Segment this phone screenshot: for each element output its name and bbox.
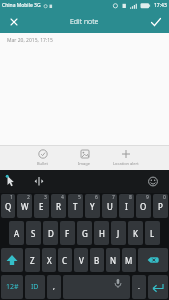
staticText: R xyxy=(56,201,61,212)
staticText: C xyxy=(62,255,68,266)
staticText: K xyxy=(133,228,138,239)
staticText: China Mobile 3G xyxy=(2,2,41,9)
staticText: 5 xyxy=(78,194,81,201)
staticText: W xyxy=(21,201,29,212)
button[interactable]: N xyxy=(106,248,120,272)
button[interactable]: S xyxy=(26,221,41,245)
staticText: ID xyxy=(31,282,39,292)
button[interactable]: R xyxy=(51,194,66,218)
staticText: J xyxy=(117,228,120,239)
staticText: X xyxy=(47,255,52,266)
button[interactable]: 12# xyxy=(1,275,23,299)
staticText: 3 xyxy=(44,194,47,201)
staticText: 17:43 xyxy=(154,2,167,9)
button[interactable]: D xyxy=(43,221,58,245)
button[interactable]: , xyxy=(47,275,61,299)
staticText: T xyxy=(73,201,78,212)
staticText: . xyxy=(138,282,140,292)
button[interactable]: M xyxy=(122,248,136,272)
button[interactable] xyxy=(149,15,163,29)
button[interactable]: . xyxy=(132,275,146,299)
button[interactable]: T xyxy=(68,194,83,218)
button[interactable]: L xyxy=(145,221,160,245)
staticText: 6 xyxy=(95,194,98,201)
staticText: 7 xyxy=(112,194,115,201)
staticText: P xyxy=(158,201,163,212)
button[interactable]: U xyxy=(102,194,117,218)
staticText: F xyxy=(65,228,70,239)
button[interactable]: Q xyxy=(1,194,15,218)
button[interactable]: Bullet xyxy=(37,149,48,166)
button[interactable]: G xyxy=(77,221,92,245)
staticText: U xyxy=(107,201,113,212)
staticText: B xyxy=(94,255,100,266)
button[interactable] xyxy=(1,248,23,272)
staticText: 9 xyxy=(146,194,149,201)
staticText: V xyxy=(79,255,84,266)
staticText: 2 xyxy=(27,194,30,201)
button[interactable] xyxy=(148,275,168,299)
button[interactable]: B xyxy=(90,248,104,272)
staticText: Z xyxy=(30,255,35,266)
button[interactable]: W xyxy=(17,194,32,218)
button[interactable]: H xyxy=(94,221,109,245)
staticText: Q xyxy=(5,201,12,212)
button[interactable] xyxy=(138,248,168,272)
staticText: Y xyxy=(90,201,95,212)
staticText: 1 xyxy=(10,194,13,201)
staticText: Bullet xyxy=(37,161,48,166)
button[interactable]: A xyxy=(9,221,24,245)
staticText: 8 xyxy=(129,194,132,201)
staticText: , xyxy=(53,282,55,292)
staticText: G xyxy=(82,228,88,239)
staticText: I xyxy=(125,201,128,212)
staticText: O xyxy=(140,201,147,212)
button[interactable]: Image xyxy=(78,149,91,166)
button[interactable]: Y xyxy=(85,194,100,218)
button[interactable]: F xyxy=(60,221,75,245)
staticText: Location alert xyxy=(113,161,139,166)
staticText: E xyxy=(39,201,44,212)
button[interactable]: K xyxy=(128,221,143,245)
staticText: 12# xyxy=(6,282,19,292)
staticText: Image xyxy=(78,161,91,166)
button[interactable]: E xyxy=(34,194,49,218)
button[interactable]: Location alert xyxy=(113,149,139,166)
button[interactable] xyxy=(9,17,19,27)
button[interactable]: X xyxy=(42,248,56,272)
staticText: Edit note xyxy=(70,17,99,27)
button[interactable]: O xyxy=(136,194,151,218)
staticText: S xyxy=(31,228,36,239)
staticText: L xyxy=(150,228,155,239)
staticText: A xyxy=(14,228,20,239)
staticText: Mar 20, 2015, 17:15 xyxy=(7,37,53,44)
button[interactable]: P xyxy=(153,194,168,218)
button[interactable]: Z xyxy=(25,248,40,272)
button[interactable]: ID xyxy=(25,275,45,299)
staticText: M xyxy=(125,255,133,266)
button[interactable]: V xyxy=(74,248,88,272)
staticText: D xyxy=(48,228,54,239)
button[interactable]: J xyxy=(111,221,126,245)
staticText: N xyxy=(110,255,117,266)
button[interactable]: I xyxy=(119,194,134,218)
staticText: 4 xyxy=(61,194,64,201)
button[interactable] xyxy=(63,275,130,299)
staticText: H xyxy=(99,228,105,239)
button[interactable]: C xyxy=(58,248,72,272)
staticText: 0 xyxy=(163,194,166,201)
